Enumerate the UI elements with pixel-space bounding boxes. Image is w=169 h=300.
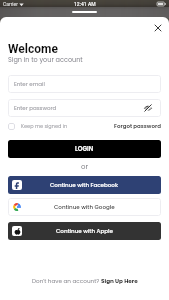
staticText: Keep me signed in (21, 123, 68, 130)
button[interactable]: Continue with Facebook (8, 176, 161, 194)
button[interactable]: Enter email (8, 75, 161, 93)
staticText: or (8, 162, 161, 172)
staticText: Don't have an account? (32, 277, 101, 285)
staticText: Welcome (8, 42, 58, 56)
staticText: Sign Up Here (101, 277, 138, 285)
button[interactable]: Show password (144, 104, 152, 112)
staticText: Continue with Google (54, 203, 115, 211)
staticText: Continue with Apple (56, 227, 113, 235)
button[interactable]: Close (150, 20, 165, 35)
staticText: Sign in to your account (8, 55, 83, 64)
staticText: Carrier (3, 1, 18, 7)
button[interactable]: Keep me signed in (8, 123, 68, 130)
staticText: Enter password (14, 104, 57, 112)
button[interactable]: LOGIN (8, 140, 161, 158)
staticText: Continue with Facebook (50, 181, 119, 189)
button[interactable]: Forgot password (114, 122, 161, 130)
button[interactable]: Continue with Google (8, 198, 161, 216)
button[interactable]: Continue with Apple (8, 222, 161, 240)
staticText: Enter email (14, 80, 45, 88)
button[interactable]: Enter password (8, 99, 161, 117)
staticText: LOGIN (75, 145, 94, 153)
button[interactable]: Don't have an account? (0, 277, 169, 285)
staticText: 12:41 AM (74, 1, 96, 7)
